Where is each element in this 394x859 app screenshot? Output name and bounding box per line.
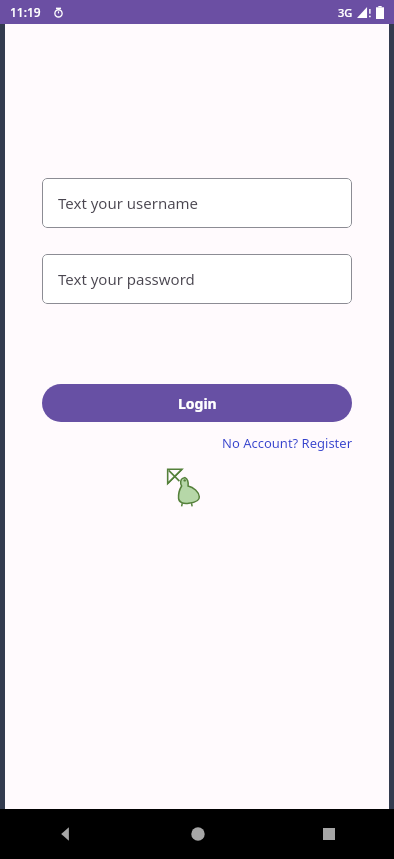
staticText: Text your username xyxy=(58,193,199,213)
staticText: No Account? Register xyxy=(222,434,352,452)
button[interactable]: Back xyxy=(0,809,132,859)
button[interactable]: Text your password xyxy=(42,254,352,304)
button[interactable]: Text your username xyxy=(42,178,352,228)
staticText: Text your password xyxy=(58,269,195,289)
staticText: 11:19 xyxy=(10,4,41,20)
staticText: 3G xyxy=(338,5,353,20)
staticText: Login xyxy=(178,394,217,413)
button[interactable]: Recent apps xyxy=(263,809,394,859)
button[interactable]: Home xyxy=(132,809,263,859)
button[interactable]: Login xyxy=(42,384,352,422)
button[interactable]: No Account? Register xyxy=(222,434,352,452)
other: Image placeholder xyxy=(167,468,201,508)
